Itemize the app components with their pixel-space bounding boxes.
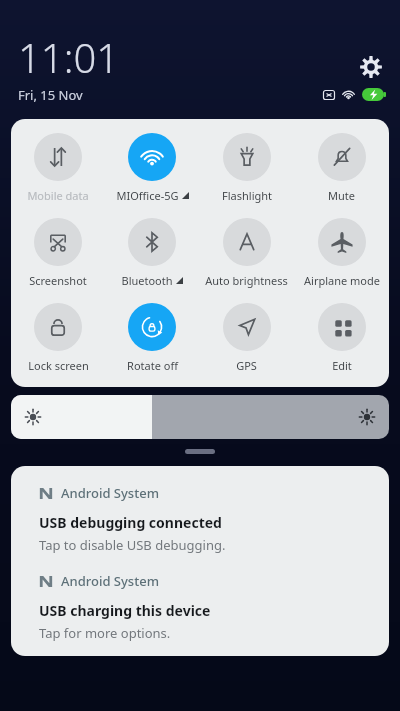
staticText: Screenshot [29, 273, 87, 288]
staticText: USB debugging connected [39, 513, 222, 532]
button[interactable]: Flashlight [199, 133, 294, 203]
button[interactable]: Lock screen [11, 303, 105, 373]
button[interactable]: Edit [294, 303, 389, 373]
button[interactable]: GPS [199, 303, 294, 373]
button[interactable]: Android System [11, 466, 389, 554]
button[interactable]: Brightness [11, 395, 389, 439]
staticText: Mute [328, 188, 355, 203]
staticText: Fri, 15 Nov [18, 86, 83, 104]
button[interactable]: Mute [294, 133, 389, 203]
staticText: Android System [61, 572, 159, 590]
staticText: Bluetooth [121, 273, 173, 288]
button[interactable]: Rotate off [105, 303, 199, 373]
button[interactable]: Airplane mode [294, 218, 389, 288]
staticText: Airplane mode [304, 273, 380, 288]
staticText: Flashlight [222, 188, 272, 203]
staticText: USB charging this device [39, 601, 211, 620]
staticText: Tap for more options. [39, 624, 171, 642]
staticText: Mobile data [27, 188, 89, 203]
staticText: Rotate off [127, 358, 178, 373]
staticText: Android System [61, 484, 159, 502]
button[interactable]: Android System [11, 554, 389, 642]
button[interactable]: MIOffice-5G [105, 133, 199, 203]
staticText: Auto brightness [205, 273, 288, 288]
staticText: Edit [332, 358, 352, 373]
button[interactable]: Mobile data [11, 133, 105, 203]
button[interactable]: Screenshot [11, 218, 105, 288]
button[interactable]: Settings [356, 52, 386, 82]
staticText: MIOffice-5G [116, 188, 179, 203]
staticText: 11:01 [18, 30, 120, 84]
staticText: Lock screen [28, 358, 89, 373]
button[interactable]: Bluetooth [105, 218, 199, 288]
staticText: Tap to disable USB debugging. [39, 536, 226, 554]
staticText: GPS [236, 358, 257, 373]
button[interactable]: Auto brightness [199, 218, 294, 288]
